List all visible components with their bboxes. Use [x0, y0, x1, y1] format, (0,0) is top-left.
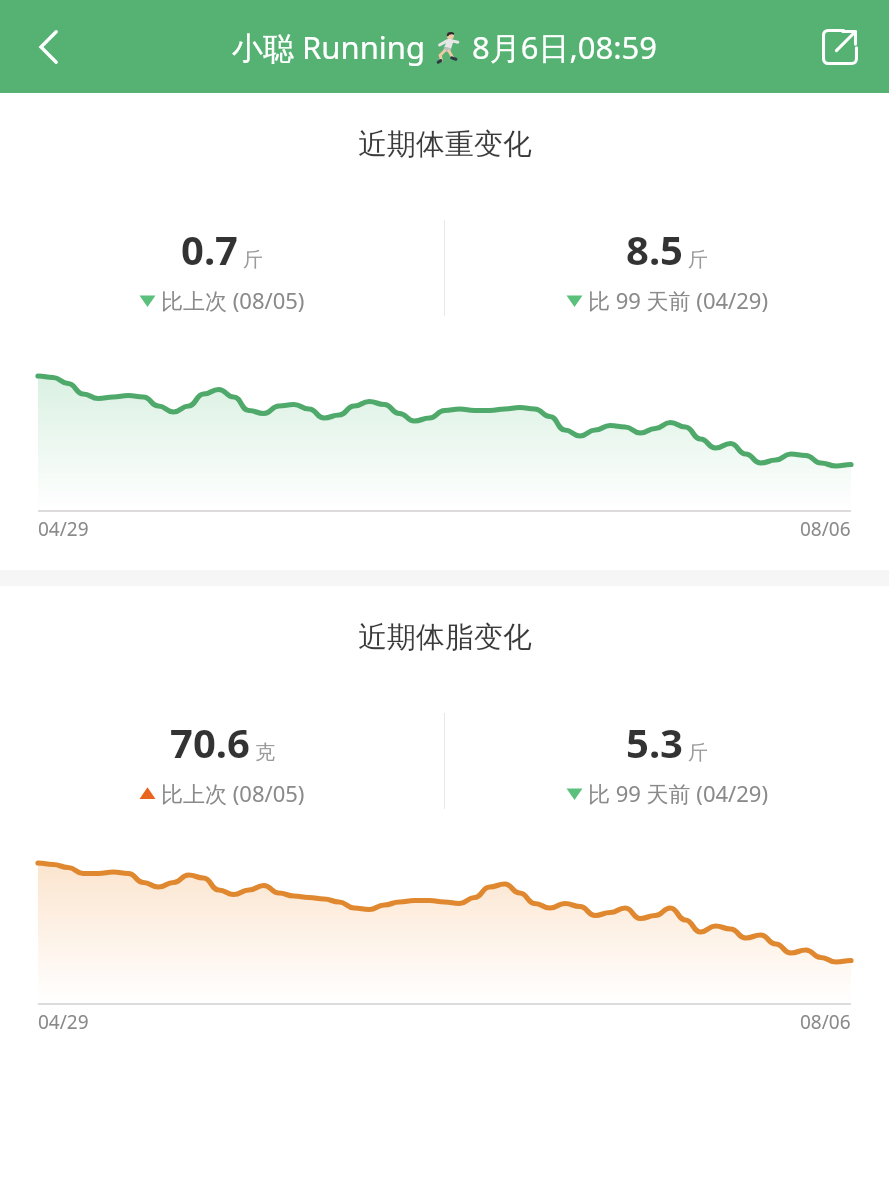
staticText: 比上次 (08/05) [161, 285, 305, 315]
staticText: 8月6日,08:59 [472, 26, 658, 68]
staticText: 比上次 (08/05) [161, 778, 305, 808]
staticText: 小聪 Running [232, 26, 426, 68]
staticText: 08/06 [800, 1009, 851, 1035]
staticText: 0.7 [181, 222, 238, 276]
staticText: 近期体脂变化 [358, 619, 532, 656]
button[interactable]: Back [12, 10, 86, 84]
staticText: 04/29 [38, 516, 89, 542]
staticText: 08/06 [800, 516, 851, 542]
staticText: 克 [255, 740, 275, 765]
staticText: 5.3 [626, 715, 683, 769]
staticText: 8.5 [626, 222, 683, 276]
button[interactable]: Share [803, 10, 877, 84]
staticText: 比 99 天前 (04/29) [588, 285, 769, 315]
staticText: 04/29 [38, 1009, 89, 1035]
staticText: 比 99 天前 (04/29) [588, 778, 769, 808]
staticText: 斤 [243, 247, 263, 272]
staticText: 近期体重变化 [358, 126, 532, 163]
staticText: 斤 [688, 247, 708, 272]
staticText: 斤 [688, 740, 708, 765]
staticText: 70.6 [170, 715, 250, 769]
